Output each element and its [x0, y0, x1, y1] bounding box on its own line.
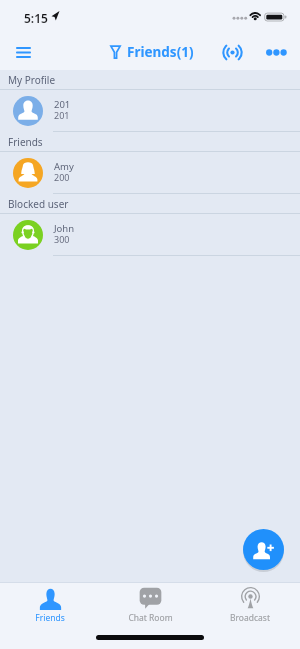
button[interactable]: John	[0, 214, 300, 256]
button[interactable]: Friends(1)	[110, 43, 194, 61]
button[interactable]: More options	[263, 39, 289, 65]
staticText: 201	[54, 109, 70, 121]
staticText: Friends(1)	[127, 43, 194, 61]
staticText: Chat Room	[128, 612, 173, 624]
staticText: 201	[54, 98, 71, 111]
button[interactable]: Broadcast	[200, 583, 300, 649]
staticText: Amy	[54, 160, 74, 173]
staticText: Blocked user	[8, 197, 69, 211]
staticText: Broadcast	[230, 612, 270, 624]
staticText: Friends	[8, 135, 43, 149]
button[interactable]: Chat Room	[100, 583, 200, 649]
staticText: 5:15	[24, 10, 48, 26]
button[interactable]: 201	[0, 90, 300, 132]
button[interactable]: Friends	[0, 583, 100, 649]
button[interactable]: Broadcast	[219, 39, 245, 65]
button[interactable]: Amy	[0, 152, 300, 194]
button[interactable]: Add friend	[243, 529, 284, 570]
staticText: 200	[54, 171, 70, 183]
staticText: John	[54, 222, 75, 235]
staticText: My Profile	[8, 73, 56, 87]
staticText: 300	[54, 233, 70, 245]
button[interactable]: Menu	[9, 38, 37, 66]
staticText: Friends	[35, 612, 65, 624]
